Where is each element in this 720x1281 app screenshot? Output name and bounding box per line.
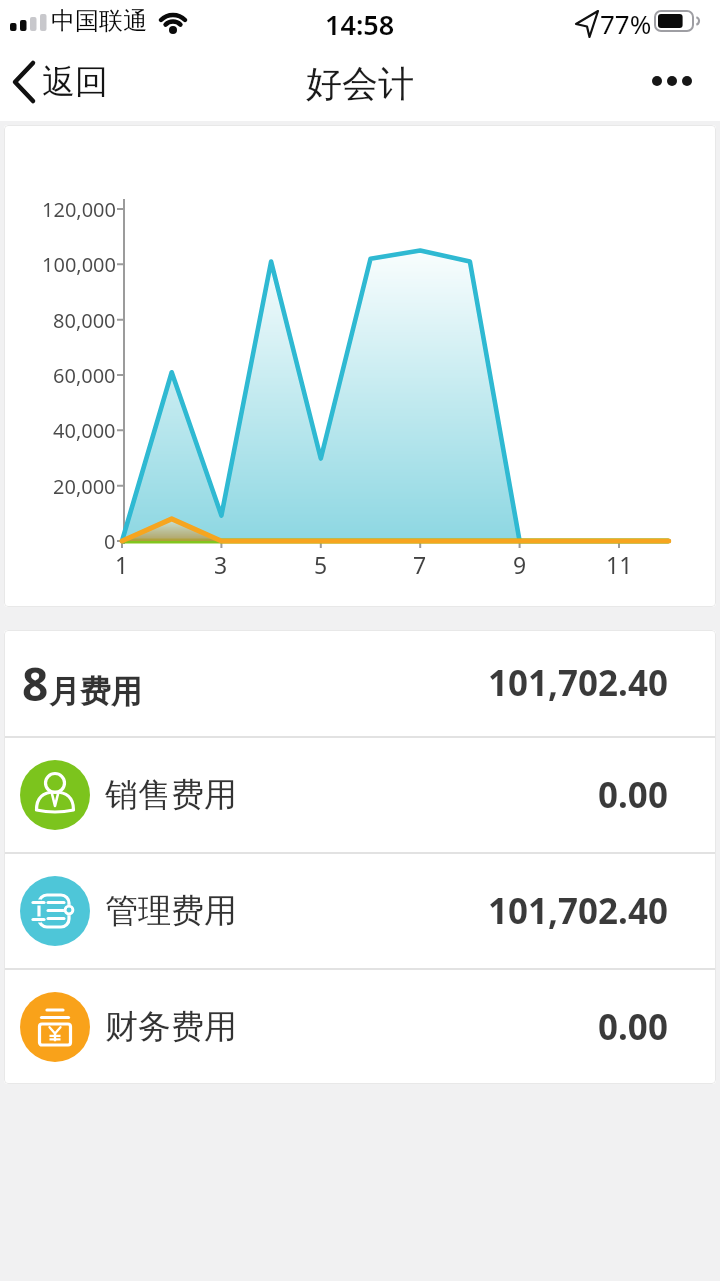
staticText: 销售费用: [105, 774, 237, 816]
staticText: 好会计: [306, 61, 414, 106]
staticText: 77%: [600, 6, 652, 36]
staticText: 月费用: [49, 672, 142, 711]
staticText: 100,000: [42, 251, 116, 278]
staticText: 7: [413, 549, 427, 579]
staticText: 80,000: [53, 307, 116, 334]
staticText: 120,000: [42, 196, 116, 223]
staticText: 14:58: [325, 6, 395, 36]
staticText: 101,702.40: [488, 887, 668, 935]
button[interactable]: [640, 59, 704, 105]
staticText: 8: [22, 652, 49, 715]
button[interactable]: 销售费用: [4, 738, 716, 852]
staticText: 财务费用: [105, 1006, 237, 1048]
staticText: 0.00: [598, 771, 668, 819]
staticText: 9: [513, 549, 527, 579]
button[interactable]: 管理费用: [4, 854, 716, 968]
staticText: 中国联通: [51, 6, 147, 36]
staticText: 60,000: [53, 362, 116, 389]
staticText: 管理费用: [105, 890, 237, 932]
staticText: 1: [115, 549, 129, 579]
staticText: 0: [104, 528, 116, 555]
staticText: 11: [606, 549, 633, 579]
staticText: 20,000: [53, 473, 116, 500]
button[interactable]: 返回: [42, 55, 152, 109]
staticText: 40,000: [53, 417, 116, 444]
staticText: 0.00: [598, 1003, 668, 1051]
staticText: 返回: [42, 61, 108, 103]
staticText: 5: [314, 549, 328, 579]
staticText: 101,702.40: [488, 659, 668, 707]
button[interactable]: 财务费用: [4, 970, 716, 1084]
button[interactable]: 8: [4, 630, 716, 736]
staticText: 3: [214, 549, 228, 579]
